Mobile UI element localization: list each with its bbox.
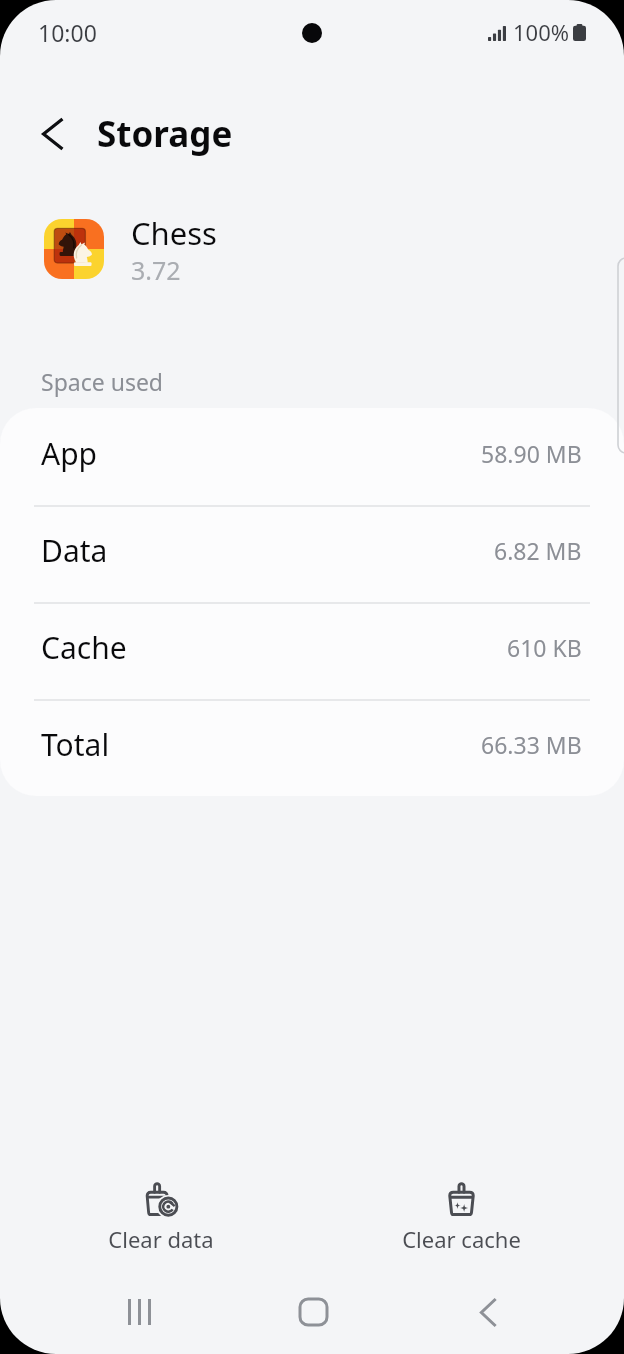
staticText: App — [41, 433, 98, 474]
staticText: 66.33 MB — [481, 729, 582, 760]
staticText: Cache — [41, 627, 127, 668]
button[interactable]: App — [0, 408, 624, 505]
staticText: 610 KB — [507, 632, 582, 663]
staticText: Data — [41, 530, 108, 571]
button[interactable]: Recent apps — [52, 1286, 226, 1338]
staticText: 10:00 — [38, 17, 97, 48]
button[interactable]: Navigate up — [22, 103, 84, 165]
button[interactable]: Clear cache — [311, 1183, 611, 1261]
button[interactable]: Data — [0, 505, 624, 602]
staticText: Clear cache — [402, 1224, 521, 1254]
staticText: Space used — [41, 366, 164, 397]
button[interactable]: Back — [401, 1286, 576, 1338]
staticText: Total — [41, 724, 110, 765]
staticText: 3.72 — [131, 253, 181, 287]
staticText: 100% — [513, 17, 570, 47]
staticText: Storage — [97, 110, 233, 158]
staticText: Chess — [131, 212, 217, 254]
staticText: Clear data — [108, 1224, 214, 1254]
staticText: 58.90 MB — [481, 438, 582, 469]
button[interactable]: Cache — [0, 602, 624, 699]
button[interactable]: Home — [226, 1286, 401, 1338]
staticText: 6.82 MB — [494, 535, 582, 566]
button[interactable]: Total — [0, 699, 624, 796]
button[interactable]: Clear data — [11, 1183, 311, 1261]
